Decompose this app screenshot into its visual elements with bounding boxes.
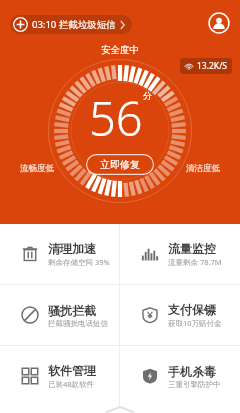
staticText: 三重引擎防护中: [168, 380, 221, 389]
staticText: 已装48款软件: [48, 379, 95, 389]
button[interactable]: 软件管理: [0, 346, 119, 406]
button[interactable]: 手机杀毒: [120, 346, 240, 406]
staticText: 流量剩余 78.7M: [168, 257, 222, 267]
staticText: 03:10 拦截垃圾短信: [32, 18, 116, 31]
button[interactable]: 立即修复: [85, 153, 155, 176]
staticText: 软件管理: [48, 363, 96, 378]
staticText: 56: [89, 86, 143, 150]
button[interactable]: 支付保镖: [120, 285, 240, 345]
staticText: 拦截骚扰电话短信: [48, 319, 108, 328]
button[interactable]: 流量监控: [120, 224, 240, 284]
button[interactable]: 骚扰拦截: [0, 285, 119, 345]
button[interactable]: Expand: [0, 406, 240, 413]
staticText: 手机杀毒: [168, 364, 216, 379]
staticText: 骚扰拦截: [48, 303, 96, 318]
button[interactable]: 清理加速: [0, 224, 119, 284]
staticText: 支付保镖: [168, 302, 216, 317]
button[interactable]: 13.2K/S: [180, 58, 232, 74]
staticText: 流量监控: [168, 241, 216, 256]
staticText: 分: [143, 90, 152, 101]
button[interactable]: 03:10 拦截垃圾短信: [10, 15, 132, 34]
staticText: 剩余存储空间 39%: [48, 257, 110, 267]
staticText: 13.2K/S: [197, 60, 227, 72]
staticText: 获取10万赔付金: [168, 318, 222, 328]
staticText: 流畅度低: [20, 163, 54, 174]
button[interactable]: Account: [207, 11, 231, 35]
staticText: 清洁度低: [186, 163, 220, 174]
staticText: 立即修复: [100, 158, 140, 171]
staticText: 安全度中: [101, 44, 139, 56]
staticText: 清理加速: [48, 241, 96, 256]
